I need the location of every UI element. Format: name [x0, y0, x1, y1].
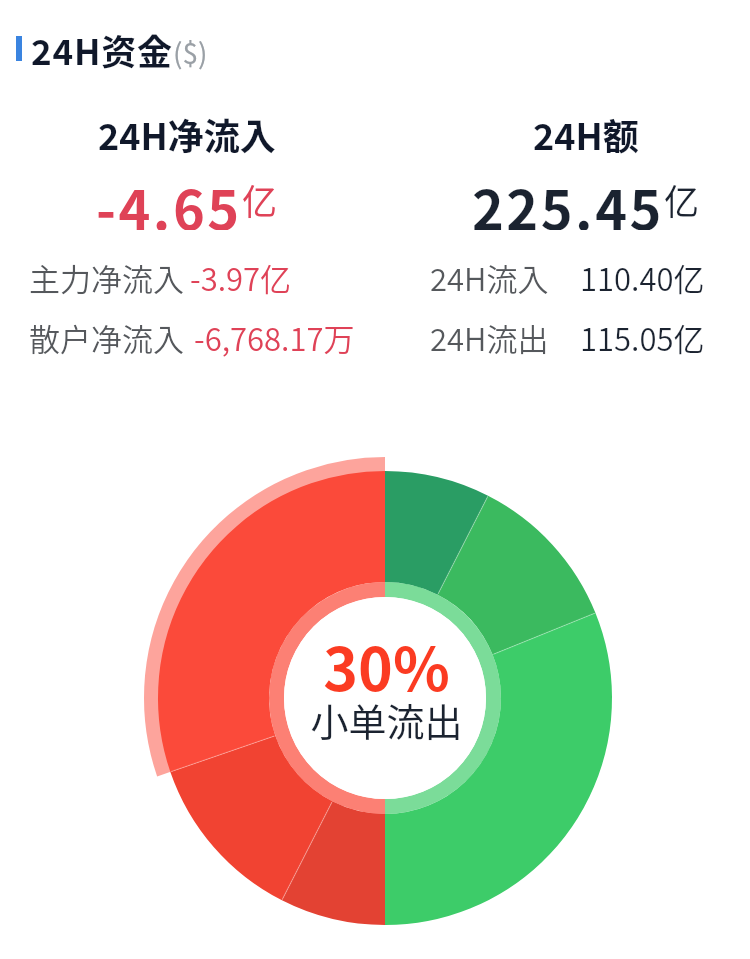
button[interactable]: 24H资金 — [0, 14, 750, 74]
staticText: 24H净流入 — [98, 108, 276, 160]
button[interactable]: 24H fund flow donut chart — [144, 457, 626, 939]
staticText: 24H资金 — [31, 24, 173, 75]
staticText: 亿 — [664, 174, 700, 225]
button[interactable]: 24H流出 — [424, 309, 724, 357]
staticText: -4.65 — [96, 167, 242, 230]
staticText: -3.97亿 — [190, 255, 292, 300]
button[interactable]: 24H流入 — [424, 249, 724, 297]
button[interactable]: 主力净流入 — [23, 249, 323, 297]
staticText: 30% — [323, 623, 450, 708]
staticText: 110.40亿 — [580, 255, 705, 300]
staticText: 24H流入 — [430, 255, 549, 300]
staticText: -6,768.17万 — [194, 315, 355, 360]
staticText: 115.05亿 — [580, 315, 705, 360]
staticText: 24H额 — [533, 108, 639, 160]
staticText: 24H流出 — [430, 315, 549, 360]
staticText: 小单流出 — [310, 692, 463, 747]
button[interactable]: 散户净流入 — [23, 309, 323, 357]
staticText: ($) — [173, 32, 208, 73]
staticText: 主力净流入 — [29, 255, 184, 300]
staticText: 散户净流入 — [29, 315, 184, 360]
staticText: 225.45 — [472, 167, 664, 230]
staticText: 亿 — [242, 174, 278, 225]
button[interactable]: 24H净流入 — [7, 100, 367, 230]
button[interactable]: 24H额 — [406, 100, 750, 230]
